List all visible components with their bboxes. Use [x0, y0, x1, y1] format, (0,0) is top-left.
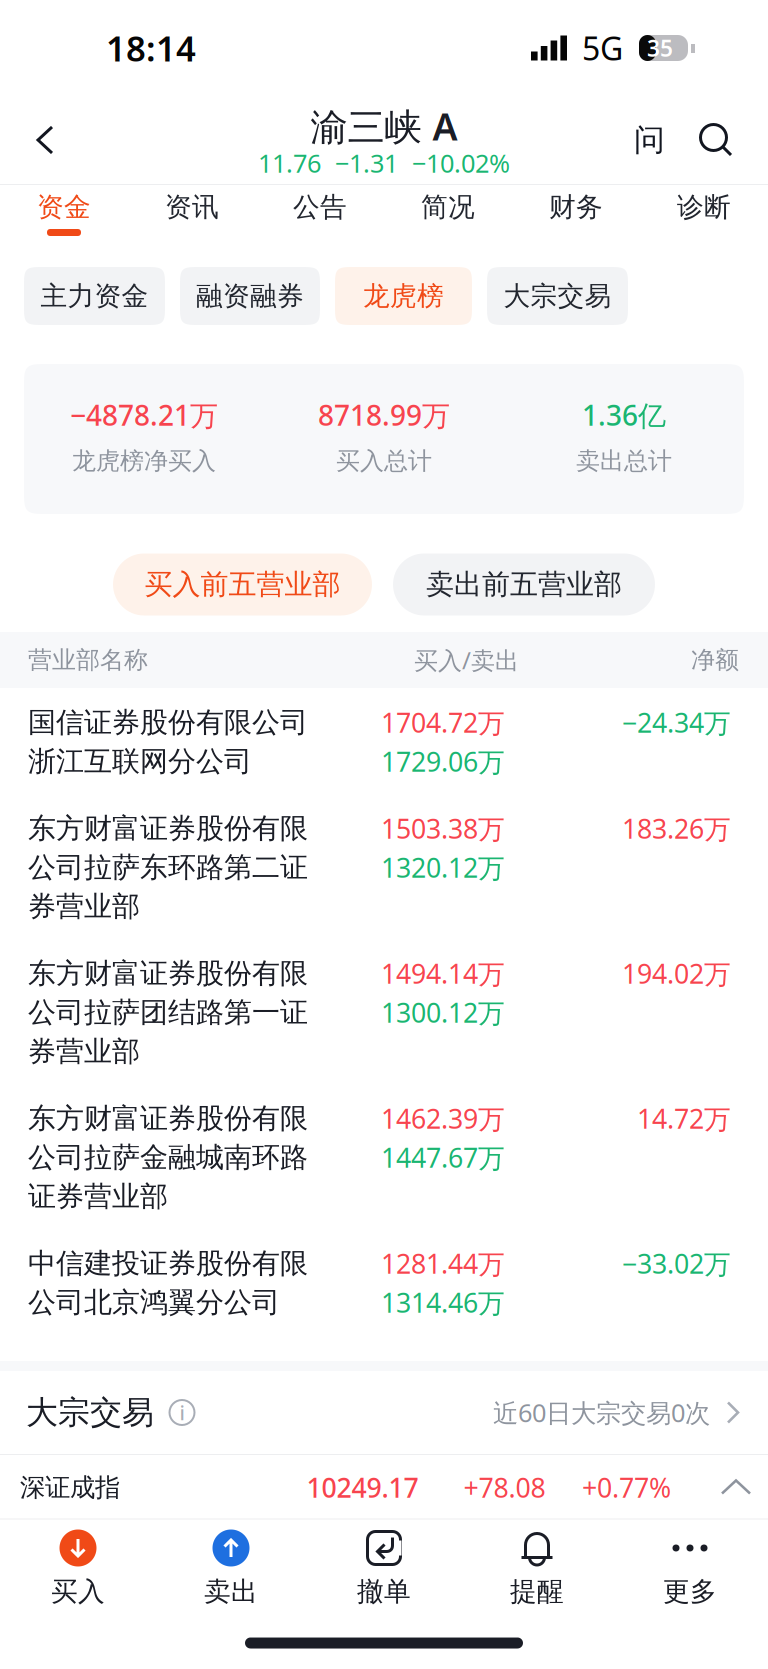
staticText: 1281.44万 — [381, 1246, 505, 1281]
staticText: 194.02万 — [622, 956, 731, 991]
staticText: 主力资金 — [40, 280, 148, 312]
staticText: 买入/卖出 — [414, 644, 519, 676]
button[interactable]: 融资融券 — [180, 267, 320, 325]
staticText: 国信证券股份有限公司 — [28, 705, 308, 740]
button[interactable]: 龙虎榜 — [335, 267, 472, 325]
staticText: 龙虎榜 — [363, 280, 444, 312]
staticText: 证券营业部 — [28, 1179, 168, 1214]
staticText: 资讯 — [165, 191, 219, 223]
button[interactable]: 更多 — [613, 1524, 766, 1624]
staticText: 卖出总计 — [576, 446, 672, 476]
button[interactable]: 深证成指 — [0, 1455, 768, 1520]
staticText: 公告 — [293, 191, 347, 223]
staticText: 35 — [647, 33, 673, 63]
staticText: 10249.17 — [306, 1470, 418, 1505]
button[interactable]: 诊断 — [640, 185, 768, 251]
staticText: i — [179, 1399, 184, 1426]
button[interactable]: 卖出前五营业部 — [393, 553, 655, 615]
staticText: −24.34万 — [622, 705, 731, 740]
staticText: 券营业部 — [28, 1034, 140, 1069]
staticText: 大宗交易 — [26, 1393, 154, 1432]
button[interactable]: 资讯 — [128, 185, 256, 251]
staticText: 龙虎榜净买入 — [72, 446, 216, 476]
staticText: 近60日大宗交易0次 — [493, 1396, 710, 1429]
staticText: 买入总计 — [336, 446, 432, 476]
staticText: 11.76 — [258, 146, 321, 180]
staticText: 东方财富证券股份有限 — [28, 1101, 308, 1136]
button[interactable]: 大宗交易 — [487, 267, 628, 325]
staticText: 营业部名称 — [28, 645, 148, 675]
staticText: 深证成指 — [20, 1472, 120, 1503]
button[interactable]: 简况 — [384, 185, 512, 251]
staticText: 财务 — [549, 191, 603, 223]
staticText: 1704.72万 — [381, 705, 505, 740]
staticText: −33.02万 — [622, 1246, 731, 1281]
staticText: 1462.39万 — [381, 1101, 505, 1136]
button[interactable]: 提醒 — [460, 1524, 613, 1624]
staticText: 18:14 — [106, 25, 196, 71]
staticText: 1494.14万 — [381, 956, 505, 991]
button[interactable]: 资金 — [0, 185, 128, 251]
staticText: 公司北京鸿翼分公司 — [28, 1285, 280, 1320]
staticText: 净额 — [691, 645, 739, 675]
staticText: 卖出前五营业部 — [426, 567, 622, 602]
staticText: +0.77% — [582, 1470, 671, 1505]
staticText: 浙江互联网分公司 — [28, 744, 252, 779]
staticText: 中信建投证券股份有限 — [28, 1246, 308, 1281]
staticText: 1729.06万 — [381, 744, 505, 779]
button[interactable]: 问 — [620, 107, 679, 173]
button[interactable]: Search — [679, 109, 756, 171]
staticText: 1.36亿 — [582, 396, 666, 434]
button[interactable]: 大宗交易 — [0, 1371, 768, 1454]
staticText: 大宗交易 — [503, 280, 611, 312]
button[interactable]: 财务 — [512, 185, 640, 251]
staticText: −4878.21万 — [70, 396, 218, 434]
staticText: 183.26万 — [622, 811, 731, 846]
button[interactable]: 卖出 — [154, 1524, 307, 1624]
staticText: 资金 — [37, 191, 91, 223]
button[interactable]: 主力资金 — [24, 267, 165, 325]
staticText: 融资融券 — [196, 280, 304, 312]
staticText: 更多 — [663, 1575, 717, 1608]
staticText: 5G — [582, 27, 623, 69]
staticText: −1.31 — [335, 146, 398, 180]
staticText: 卖出 — [204, 1575, 258, 1608]
staticText: 诊断 — [677, 191, 731, 223]
staticText: 公司拉萨团结路第一证 — [28, 995, 308, 1030]
button[interactable]: 买入 — [1, 1524, 154, 1624]
staticText: 提醒 — [510, 1575, 564, 1608]
staticText: 买入前五营业部 — [144, 567, 340, 602]
staticText: 公司拉萨金融城南环路 — [28, 1140, 308, 1175]
staticText: 渝三峡 A — [310, 101, 457, 151]
staticText: 买入 — [51, 1575, 105, 1608]
staticText: 简况 — [421, 191, 475, 223]
staticText: 1320.12万 — [381, 850, 505, 885]
staticText: 1447.67万 — [381, 1140, 505, 1175]
staticText: 东方财富证券股份有限 — [28, 956, 308, 991]
staticText: +78.08 — [463, 1470, 545, 1505]
staticText: 问 — [634, 121, 665, 159]
staticText: 1314.46万 — [381, 1285, 505, 1320]
staticText: 撤单 — [357, 1575, 411, 1608]
staticText: 公司拉萨东环路第二证 — [28, 850, 308, 885]
staticText: 1300.12万 — [381, 995, 505, 1030]
button[interactable]: 撤单 — [307, 1524, 460, 1624]
button[interactable]: 买入前五营业部 — [113, 553, 372, 615]
button[interactable]: Back — [12, 109, 78, 171]
staticText: 东方财富证券股份有限 — [28, 811, 308, 846]
staticText: 8718.99万 — [318, 396, 450, 434]
button[interactable]: 公告 — [256, 185, 384, 251]
staticText: 1503.38万 — [381, 811, 505, 846]
staticText: 14.72万 — [637, 1101, 731, 1136]
staticText: −10.02% — [412, 146, 510, 180]
staticText: 券营业部 — [28, 889, 140, 924]
